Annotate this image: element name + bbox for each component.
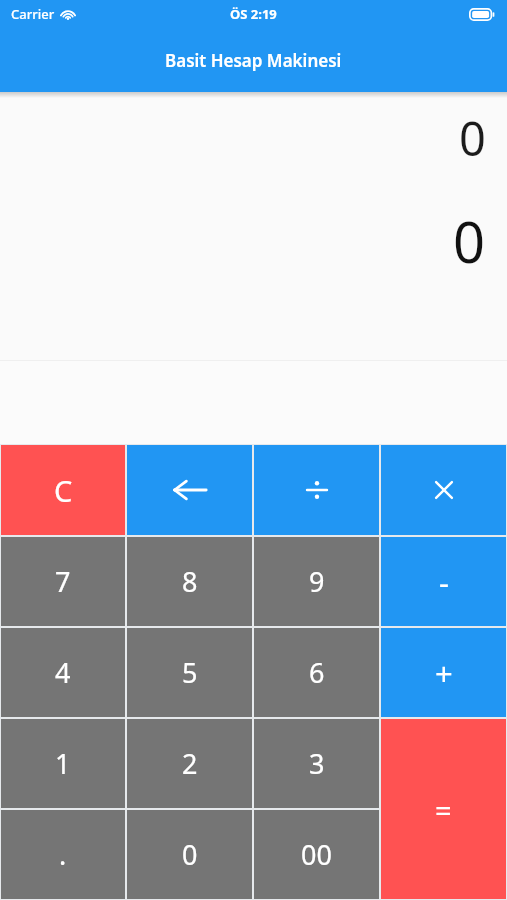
staticText: =	[435, 790, 452, 829]
staticText: .	[59, 836, 67, 873]
staticText: 7	[55, 563, 71, 600]
button[interactable]: 3	[253, 718, 380, 809]
staticText: 00	[301, 836, 332, 873]
button[interactable]: Backspace	[126, 444, 253, 536]
staticText: Basit Hesap Makinesi	[165, 49, 342, 72]
staticText: 0	[453, 203, 486, 279]
staticText: Carrier	[11, 5, 55, 23]
button[interactable]: 2	[126, 718, 253, 809]
staticText: -	[439, 561, 449, 603]
button[interactable]: .	[0, 809, 126, 900]
staticText: 3	[309, 745, 325, 782]
button[interactable]: 0	[126, 809, 253, 900]
button[interactable]: 1	[0, 718, 126, 809]
staticText: 8	[182, 563, 198, 600]
staticText: +	[435, 652, 453, 694]
button[interactable]: Multiply	[380, 444, 507, 536]
staticText: 2	[182, 745, 198, 782]
staticText: C	[54, 471, 73, 510]
button[interactable]: -	[380, 536, 507, 627]
button[interactable]: 6	[253, 627, 380, 718]
staticText: 0	[459, 106, 486, 170]
staticText: 1	[55, 745, 71, 782]
staticText: 5	[182, 654, 198, 691]
staticText: 0	[182, 836, 198, 873]
staticText: 9	[309, 563, 325, 600]
staticText: ÖS 2:19	[230, 5, 277, 23]
button[interactable]: 9	[253, 536, 380, 627]
button[interactable]: C	[0, 444, 126, 536]
button[interactable]: 7	[0, 536, 126, 627]
button[interactable]: =	[380, 718, 507, 900]
button[interactable]: 5	[126, 627, 253, 718]
button[interactable]: +	[380, 627, 507, 718]
button[interactable]: 4	[0, 627, 126, 718]
staticText: 4	[55, 654, 71, 691]
button[interactable]: 00	[253, 809, 380, 900]
button[interactable]: Divide	[253, 444, 380, 536]
button[interactable]: 8	[126, 536, 253, 627]
staticText: 6	[309, 654, 325, 691]
